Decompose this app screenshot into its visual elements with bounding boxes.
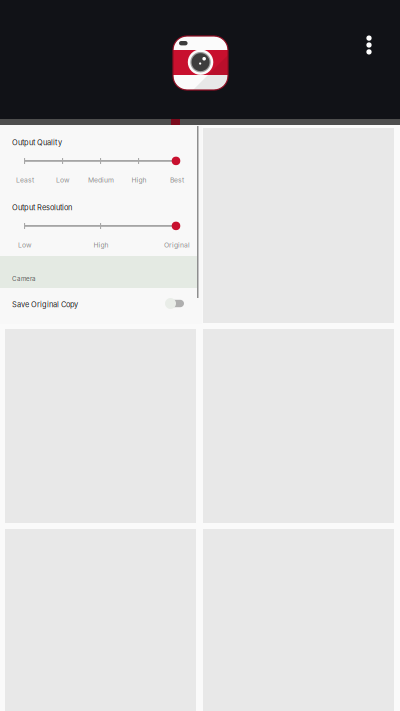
staticText: High [131,176,146,184]
staticText: Save Original Copy [12,300,78,309]
staticText: Best [170,176,184,184]
staticText: Camera [12,275,36,283]
staticText: Output Quality [12,138,62,147]
staticText: Low [56,176,70,184]
button[interactable]: More options [347,21,391,69]
staticText: High [93,241,108,249]
staticText: Medium [88,176,114,184]
staticText: Output Resolution [12,203,72,212]
staticText: Least [16,176,34,184]
staticText: Original [164,241,190,249]
button[interactable]: Save Original Copy [0,295,197,324]
button[interactable]: Photo [5,128,196,323]
staticText: Low [18,241,32,249]
